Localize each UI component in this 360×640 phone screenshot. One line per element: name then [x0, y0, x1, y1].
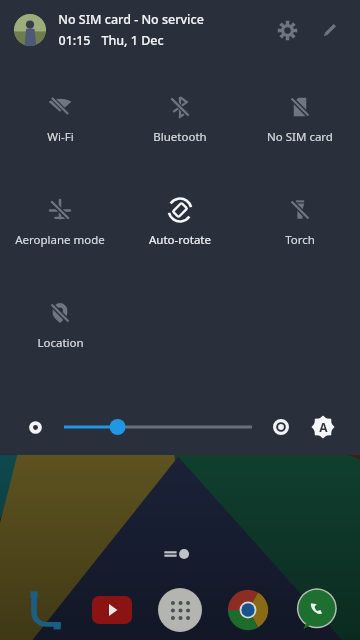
button[interactable]: Apps — [156, 586, 204, 634]
button[interactable]: Auto brightness — [308, 412, 338, 442]
button[interactable]: WhatsApp — [292, 586, 340, 634]
staticText: No SIM card — [267, 129, 333, 145]
button[interactable]: Edit tiles — [308, 9, 350, 51]
staticText: A — [319, 419, 328, 435]
staticText: Location — [37, 335, 84, 351]
staticText: Aeroplane mode — [15, 232, 105, 248]
staticText: Wi-Fi — [47, 129, 74, 145]
button[interactable]: YouTube — [88, 586, 136, 634]
button[interactable]: Phone — [20, 586, 68, 634]
button[interactable]: Aeroplane mode — [0, 191, 120, 248]
staticText: No SIM card - No service — [58, 11, 204, 28]
staticText: Thu, 1 Dec — [101, 32, 164, 49]
staticText: 01:15 — [58, 32, 91, 49]
button[interactable]: High brightness — [268, 414, 294, 440]
button[interactable]: Torch — [240, 191, 360, 248]
button[interactable]: Brightness slider — [64, 414, 252, 440]
button[interactable]: Chrome — [224, 586, 272, 634]
button[interactable]: Bluetooth — [120, 88, 240, 145]
button[interactable]: Auto-rotate — [120, 191, 240, 248]
button[interactable]: Wi-Fi — [0, 88, 120, 145]
button[interactable]: Location — [0, 294, 120, 351]
button[interactable]: Low brightness — [22, 414, 48, 440]
staticText: Bluetooth — [153, 129, 207, 145]
button[interactable]: Settings — [266, 9, 308, 51]
button[interactable]: No SIM card — [240, 88, 360, 145]
staticText: Torch — [285, 232, 315, 248]
staticText: Auto-rotate — [149, 232, 211, 248]
button[interactable]: User profile — [14, 14, 46, 46]
